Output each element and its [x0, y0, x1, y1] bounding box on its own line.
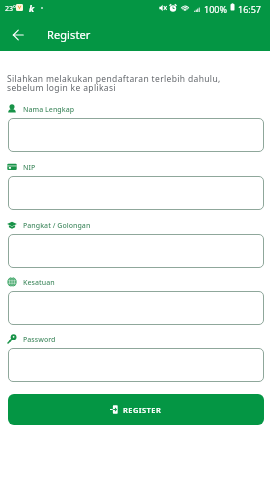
staticText: REGISTER	[123, 405, 162, 415]
staticText: 100%	[204, 3, 227, 15]
button[interactable]	[8, 176, 264, 210]
staticText: 16:57	[238, 3, 262, 15]
button[interactable]	[8, 118, 264, 152]
button[interactable]: Back	[6, 23, 29, 46]
staticText: Register	[47, 27, 91, 42]
button[interactable]	[8, 291, 264, 325]
staticText: Pangkat / Golongan	[23, 221, 91, 231]
staticText: k	[29, 2, 35, 14]
staticText: 23°	[5, 4, 17, 14]
staticText: Nama Lengkap	[23, 105, 75, 115]
staticText: Silahkan melakukan pendaftaran terlebih …	[7, 73, 221, 94]
button[interactable]	[8, 348, 264, 382]
button[interactable]: REGISTER	[8, 394, 264, 425]
button[interactable]	[8, 234, 264, 268]
staticText: Kesatuan	[23, 278, 55, 288]
staticText: NIP	[23, 163, 36, 173]
staticText: Password	[23, 335, 56, 345]
